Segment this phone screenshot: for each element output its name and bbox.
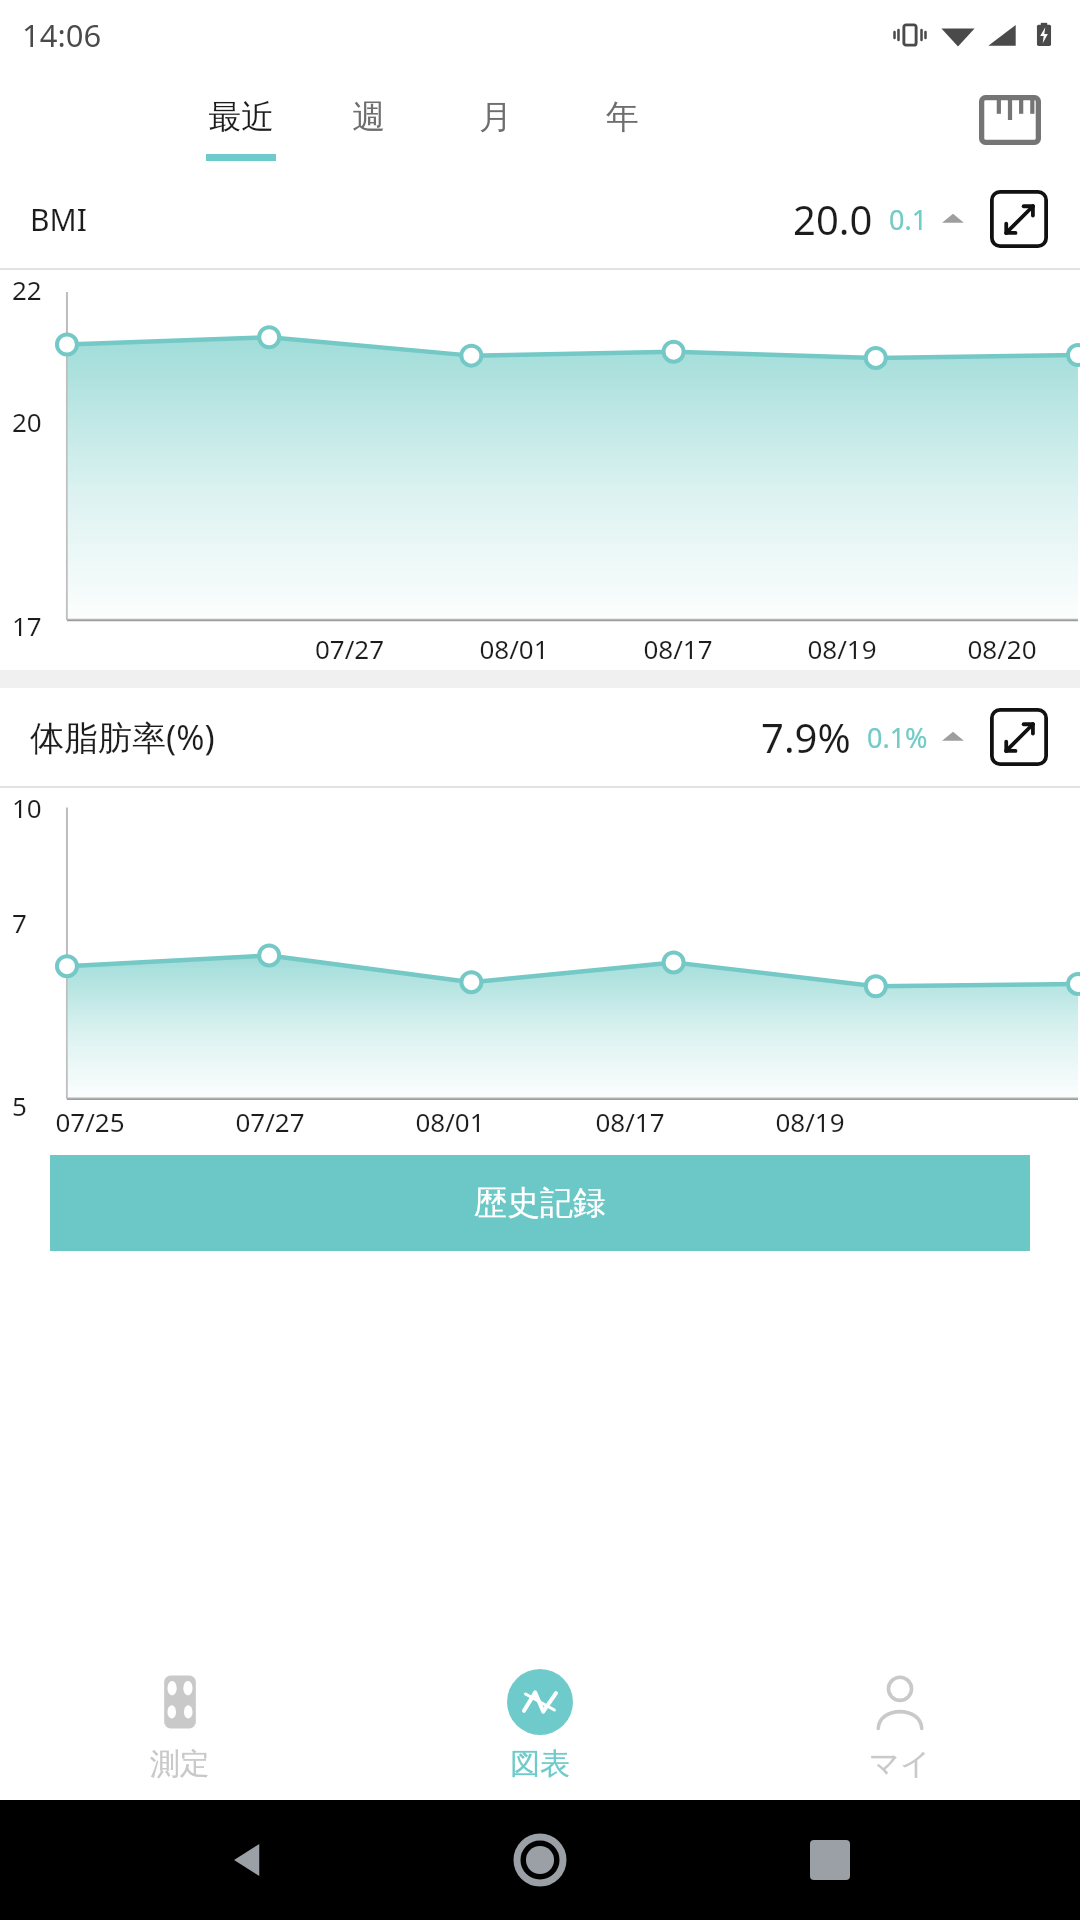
staticText: 月 [479,96,512,138]
staticText: 週 [352,96,385,138]
button[interactable]: 週 [332,70,404,170]
button[interactable]: 歴史記録 [50,1155,1030,1251]
staticText: BMI [30,199,87,240]
staticText: 08/01 [360,1104,540,1139]
staticText: 08/19 [760,631,924,666]
button[interactable]: 年 [586,70,658,170]
staticText: 歴史記録 [474,1182,606,1224]
staticText: 17 [12,608,42,643]
staticText: マイ [869,1745,931,1783]
staticText: 20.0 [793,192,873,246]
staticText: 5 [12,1088,27,1123]
staticText: 年 [606,96,639,138]
staticText: 07/27 [267,631,432,666]
staticText: 体脂肪率(%) [30,714,215,760]
staticText: 08/20 [924,631,1080,666]
staticText: 7 [12,905,27,940]
button[interactable]: 最近 [205,70,277,170]
button[interactable]: Recent apps [790,1820,870,1900]
staticText: 7.9% [761,710,851,764]
button[interactable]: 月 [459,70,531,170]
button[interactable]: 測定 [0,1652,360,1800]
staticText: 0.1 [889,201,928,238]
button[interactable]: マイ [720,1652,1080,1800]
staticText: 図表 [510,1745,570,1783]
button[interactable]: 図表 [360,1652,720,1800]
staticText: 08/17 [540,1104,720,1139]
staticText: 測定 [150,1745,210,1783]
button[interactable]: Expand chart [988,706,1050,768]
button[interactable]: Home [500,1820,580,1900]
staticText: 07/27 [180,1104,360,1139]
staticText: 08/19 [720,1104,900,1139]
staticText: 07/25 [0,1104,180,1139]
staticText: 08/01 [432,631,596,666]
staticText: 最近 [208,96,274,138]
staticText: 20 [12,404,42,439]
button[interactable]: Expand chart [988,188,1050,250]
staticText: 08/17 [596,631,760,666]
staticText: 10 [12,790,42,825]
staticText: 22 [12,272,42,307]
button[interactable]: Back [210,1820,290,1900]
staticText: 0.1% [867,719,928,756]
staticText: 14:06 [22,14,102,56]
button[interactable]: Measure unit [972,82,1048,158]
